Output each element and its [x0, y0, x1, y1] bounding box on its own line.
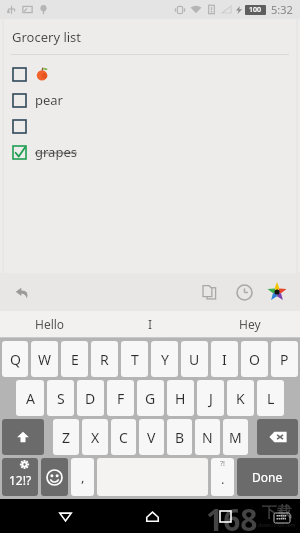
button[interactable]: P [271, 341, 298, 377]
staticText: K [236, 389, 245, 408]
staticText: Done [252, 469, 283, 485]
staticText: W [38, 350, 52, 369]
staticText: 100 [249, 5, 262, 15]
button[interactable]: Shift [2, 419, 44, 455]
staticText: 168 [206, 499, 258, 533]
button[interactable]: N [195, 419, 220, 455]
staticText: R [100, 350, 109, 369]
button[interactable]: Unchecked [0, 113, 300, 139]
staticText: H [175, 389, 186, 408]
button[interactable]: E [61, 341, 88, 377]
staticText: D [85, 389, 96, 408]
staticText: down.it168.com [258, 522, 296, 529]
staticText: J [209, 389, 213, 408]
button[interactable]: Stickers [262, 277, 292, 307]
button[interactable]: Undo [8, 278, 36, 306]
staticText: V [147, 428, 156, 447]
staticText: Y [161, 350, 169, 369]
button[interactable]: Q [2, 341, 28, 377]
staticText: B [175, 428, 185, 447]
other: Unchecked [13, 120, 26, 133]
button[interactable]: ?! [211, 458, 234, 496]
button[interactable]: Back [50, 501, 80, 531]
staticText: T [131, 350, 139, 369]
button[interactable]: G [137, 380, 164, 416]
button[interactable]: I [100, 311, 200, 337]
staticText: 5:32 [271, 2, 293, 17]
button[interactable]: T [121, 341, 148, 377]
staticText: grapes [35, 143, 77, 161]
staticText: . [221, 470, 225, 488]
button[interactable]: Copy [195, 277, 225, 307]
button[interactable]: X [82, 419, 108, 455]
staticText: C [119, 428, 128, 447]
staticText: 12!? [9, 472, 32, 488]
button[interactable]: V [139, 419, 164, 455]
other: Unchecked [13, 94, 26, 107]
staticText: Z [62, 428, 71, 447]
staticText: Hello [35, 316, 65, 332]
staticText: X [91, 428, 100, 447]
button[interactable]: F [107, 380, 134, 416]
staticText: E [71, 350, 79, 369]
button[interactable]: R [91, 341, 118, 377]
staticText: O [249, 350, 260, 369]
other: Unchecked [13, 68, 26, 81]
button[interactable]: Y [151, 341, 178, 377]
staticText: pear [35, 91, 63, 109]
button[interactable]: B [167, 419, 192, 455]
staticText: A [26, 389, 35, 408]
staticText: Grocery list [12, 28, 82, 46]
staticText: , [81, 468, 85, 486]
button[interactable]: A [16, 380, 44, 416]
staticText: L [267, 389, 275, 408]
staticText: 下载 [262, 503, 292, 522]
button[interactable]: D [77, 380, 104, 416]
staticText: I [222, 350, 227, 369]
staticText: P [280, 350, 289, 369]
button[interactable]: I [211, 341, 238, 377]
button[interactable]: , [71, 458, 94, 496]
button[interactable]: C [111, 419, 136, 455]
button[interactable]: Hello [0, 311, 100, 337]
button[interactable]: Emoji [41, 458, 68, 496]
button[interactable]: Unchecked [0, 87, 300, 113]
staticText: Hey [239, 316, 261, 332]
button[interactable]: Symbols and settings [2, 458, 38, 496]
staticText: ?! [220, 459, 225, 469]
staticText: F [117, 389, 125, 408]
staticText: G [145, 389, 156, 408]
button[interactable]: W [31, 341, 58, 377]
button[interactable]: O [241, 341, 268, 377]
button[interactable]: L [257, 380, 284, 416]
button[interactable]: U [181, 341, 208, 377]
staticText: I [148, 316, 153, 332]
staticText: M [229, 428, 242, 447]
button[interactable]: S [47, 380, 74, 416]
staticText: S [57, 389, 65, 408]
button[interactable]: Z [53, 419, 79, 455]
staticText: Q [10, 350, 21, 369]
button[interactable]: Home [137, 501, 167, 531]
button[interactable]: Recent apps [210, 501, 240, 531]
button[interactable]: Checked [0, 139, 300, 165]
button[interactable]: Recent [229, 277, 259, 307]
staticText: U [189, 350, 200, 369]
other: Checked [13, 146, 26, 159]
button[interactable]: Backspace [257, 419, 298, 455]
button[interactable]: M [223, 419, 248, 455]
button[interactable]: J [197, 380, 224, 416]
button[interactable]: Unchecked [0, 61, 300, 87]
button[interactable]: Hey [200, 311, 300, 337]
button[interactable]: H [167, 380, 194, 416]
button[interactable]: Done [237, 458, 298, 496]
button[interactable]: K [227, 380, 254, 416]
staticText: N [202, 428, 213, 447]
